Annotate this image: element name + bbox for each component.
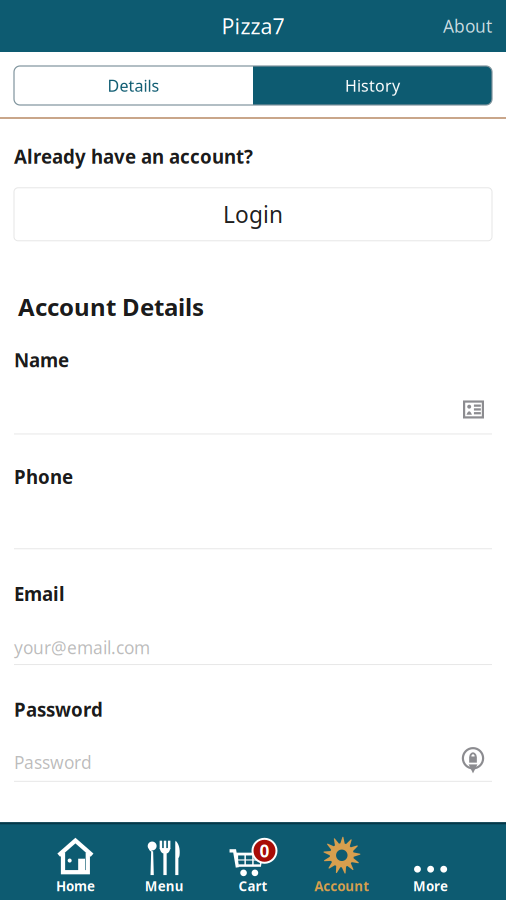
staticText: 0 xyxy=(259,839,269,862)
button[interactable]: Login xyxy=(14,188,492,241)
staticText: Already have an account? xyxy=(14,144,253,169)
staticText: Phone xyxy=(14,464,73,489)
button[interactable]: Cart xyxy=(209,877,297,895)
staticText: Password xyxy=(14,697,103,722)
button[interactable] xyxy=(386,838,475,876)
staticText: Password xyxy=(14,751,92,774)
staticText: Cart xyxy=(238,877,267,895)
staticText: Email xyxy=(14,581,65,606)
button[interactable] xyxy=(31,838,120,876)
button[interactable]: 0 xyxy=(209,838,297,876)
staticText: Home xyxy=(56,877,95,895)
staticText: Details xyxy=(107,75,159,96)
staticText: your@email.com xyxy=(14,636,150,659)
button[interactable]: Details xyxy=(14,66,253,105)
staticText: More xyxy=(413,877,448,895)
button[interactable] xyxy=(120,838,209,876)
button[interactable]: More xyxy=(386,877,475,895)
staticText: Account xyxy=(314,877,369,895)
button[interactable]: Menu xyxy=(120,877,209,895)
staticText: Login xyxy=(223,199,283,229)
staticText: Name xyxy=(14,348,69,372)
button[interactable]: Home xyxy=(31,877,120,895)
staticText: History xyxy=(345,75,400,96)
staticText: Pizza7 xyxy=(221,12,284,40)
button[interactable] xyxy=(297,837,386,876)
staticText: Account Details xyxy=(18,291,204,323)
button[interactable]: About xyxy=(443,4,506,47)
staticText: Menu xyxy=(145,877,184,895)
button[interactable]: Account xyxy=(297,877,386,895)
staticText: About xyxy=(443,14,492,37)
button[interactable]: History xyxy=(253,66,492,105)
